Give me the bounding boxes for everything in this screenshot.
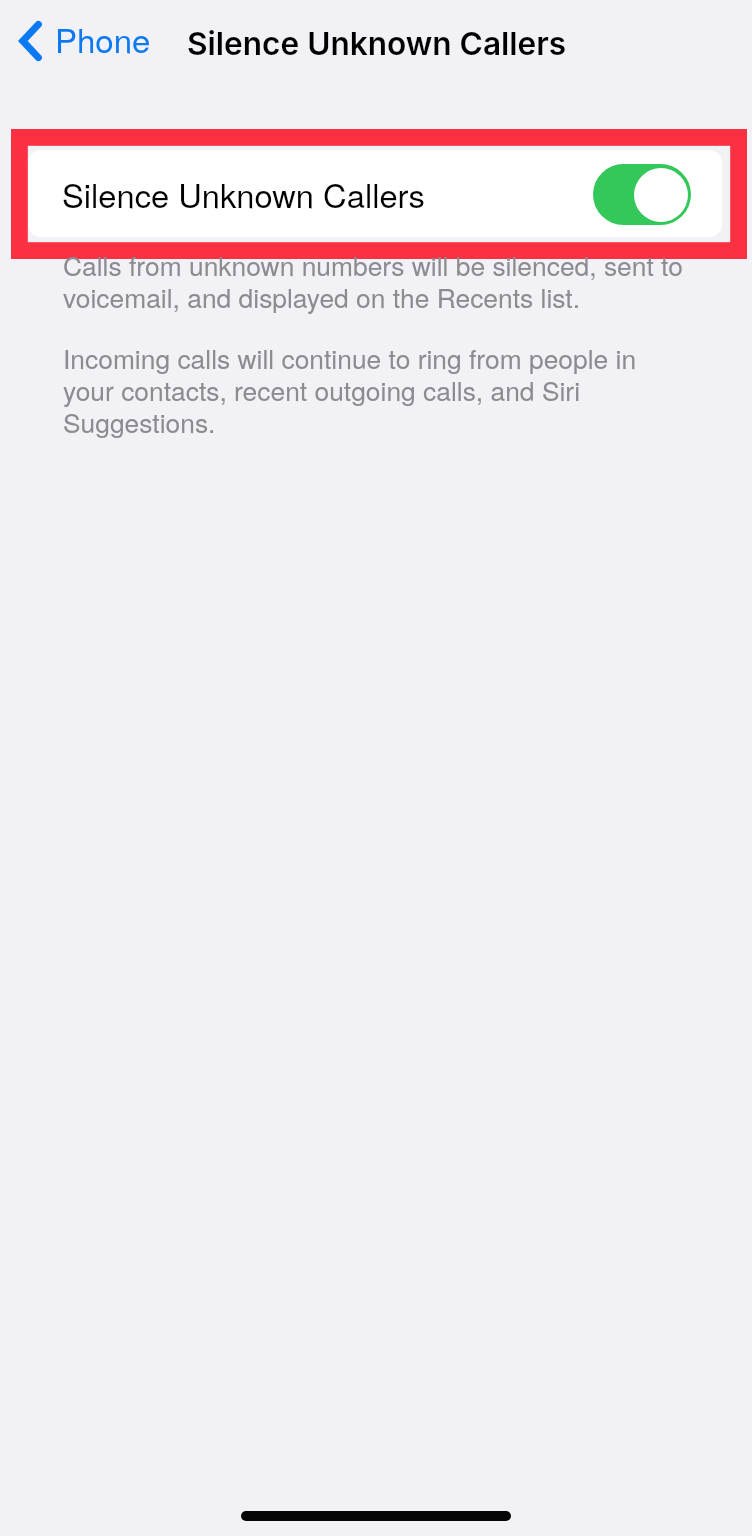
button[interactable]: Back to Phone <box>10 9 159 73</box>
staticText: Calls from unknown numbers will be silen… <box>63 250 683 314</box>
staticText: Incoming calls will continue to ring fro… <box>63 343 637 439</box>
button[interactable]: Silence Unknown Callers <box>28 150 722 237</box>
staticText: Silence Unknown Callers <box>62 170 425 217</box>
staticText: Phone <box>55 21 151 61</box>
staticText: Silence Unknown Callers <box>187 23 567 63</box>
button[interactable]: Silence Unknown Callers, on <box>593 164 691 225</box>
